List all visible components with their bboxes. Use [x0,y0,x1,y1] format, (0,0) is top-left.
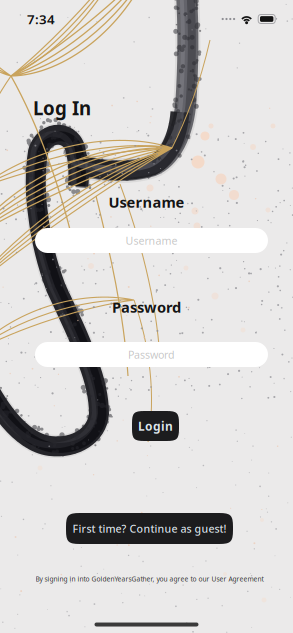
staticText: Username [125,233,177,248]
staticText: Log In [33,96,91,120]
staticText: First time? Continue as guest! [72,521,226,536]
button[interactable]: Login [132,411,179,441]
button[interactable]: Password [35,342,268,367]
staticText: Login [138,418,173,434]
button[interactable]: First time? Continue as guest! [66,513,233,544]
button[interactable]: Username [35,228,268,253]
staticText: Password [128,347,175,362]
staticText: By signing in into GoldenYearsGather, yo… [35,575,263,583]
staticText: 7:34 [27,10,55,28]
staticText: Password [112,297,181,317]
staticText: Username [108,192,184,212]
